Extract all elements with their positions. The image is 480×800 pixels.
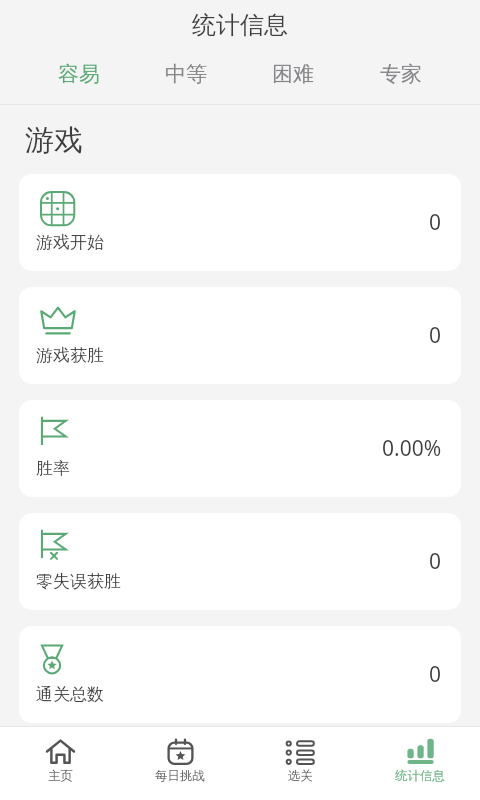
staticText: 游戏获胜 [36, 345, 104, 366]
staticText: 0.00% [382, 434, 442, 463]
button[interactable]: 中等 [132, 55, 239, 93]
staticText: 游戏 [25, 122, 83, 159]
other: Level select [286, 738, 315, 767]
staticText: 0 [429, 660, 442, 689]
button[interactable]: Daily challenge [120, 726, 240, 793]
button[interactable]: Games won [19, 287, 461, 384]
staticText: 统计信息 [192, 10, 288, 40]
button[interactable]: Flawless wins [19, 513, 461, 610]
staticText: 通关总数 [36, 684, 104, 705]
button[interactable]: Win rate [19, 400, 461, 497]
other: Games won [40, 301, 76, 337]
button[interactable]: Total levels cleared [19, 626, 461, 723]
staticText: 主页 [48, 768, 73, 784]
staticText: 胜率 [36, 458, 70, 479]
staticText: 统计信息 [395, 768, 445, 784]
other: Total levels cleared [40, 640, 76, 676]
staticText: 专家 [380, 61, 422, 87]
other: Daily challenge [166, 738, 195, 767]
other: Win rate [40, 414, 76, 450]
button[interactable]: Games started [19, 174, 461, 271]
button[interactable]: Statistics [360, 726, 480, 793]
staticText: 0 [429, 321, 442, 350]
other: Games started [40, 188, 76, 224]
button[interactable]: 困难 [239, 55, 347, 93]
button[interactable]: Level select [240, 726, 360, 793]
button[interactable]: Home [0, 726, 120, 793]
staticText: 0 [429, 208, 442, 237]
other: Statistics [406, 738, 435, 767]
staticText: 0 [429, 547, 442, 576]
staticText: 每日挑战 [155, 768, 205, 784]
staticText: 选关 [288, 768, 313, 784]
other: Flawless wins [40, 527, 76, 563]
staticText: 容易 [58, 61, 100, 87]
other: Home [46, 738, 75, 767]
staticText: 零失误获胜 [36, 571, 121, 592]
staticText: 游戏开始 [36, 232, 104, 253]
button[interactable]: 专家 [347, 55, 455, 93]
button[interactable]: 容易 [25, 55, 132, 93]
staticText: 中等 [165, 61, 207, 87]
staticText: 困难 [272, 61, 314, 87]
